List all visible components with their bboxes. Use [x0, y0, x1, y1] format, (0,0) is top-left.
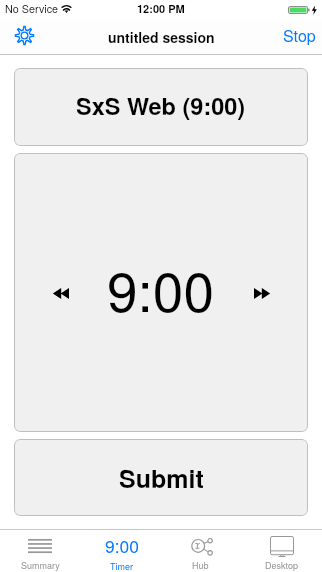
staticText: Timer [110, 560, 133, 572]
staticText: No Service [5, 1, 59, 16]
staticText: Stop [283, 24, 316, 47]
staticText: SxS Web (9:00) [76, 89, 246, 123]
button[interactable]: Settings [7, 20, 41, 51]
button[interactable]: Desktop [241, 530, 322, 572]
button[interactable]: Stop [276, 21, 322, 52]
staticText: Desktop [265, 559, 298, 572]
staticText: Summary [21, 559, 60, 572]
button[interactable]: Rewind [45, 277, 77, 309]
staticText: untitled session [108, 27, 215, 47]
staticText: 9:00 [105, 533, 140, 558]
staticText: 9:00 [107, 249, 215, 328]
button[interactable]: Submit [14, 439, 308, 516]
staticText: 12:00 PM [137, 1, 185, 17]
button[interactable]: SxS Web (9:00) [14, 68, 308, 146]
staticText: Submit [119, 460, 204, 496]
button[interactable]: Hub [160, 530, 241, 572]
button[interactable]: Fast forward [246, 277, 278, 309]
button[interactable]: Summary [0, 530, 80, 572]
staticText: Hub [192, 559, 209, 572]
button[interactable]: 9:00 [80, 530, 160, 572]
button[interactable]: 9:00 [14, 153, 308, 432]
